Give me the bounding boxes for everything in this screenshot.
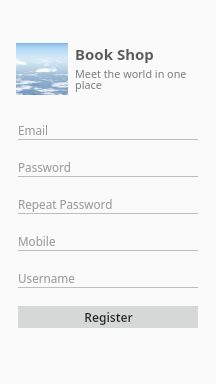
staticText: Meet the world in one place: [75, 66, 189, 93]
staticText: Email: [18, 122, 49, 138]
button[interactable]: Book Shop cover photo: [16, 43, 68, 95]
staticText: Repeat Password: [18, 196, 113, 212]
button[interactable]: Username: [18, 264, 198, 294]
staticText: Username: [18, 270, 75, 286]
button[interactable]: Email: [18, 116, 198, 146]
button[interactable]: Mobile: [18, 227, 198, 257]
staticText: Password: [18, 159, 71, 175]
staticText: Register: [84, 309, 133, 325]
button[interactable]: Repeat Password: [18, 190, 198, 220]
staticText: Mobile: [18, 233, 56, 249]
button[interactable]: Password: [18, 153, 198, 183]
button[interactable]: Register: [18, 306, 198, 328]
staticText: Book Shop: [75, 44, 154, 64]
